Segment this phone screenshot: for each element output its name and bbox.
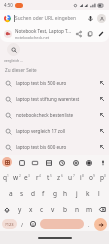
button[interactable]: x [25,202,36,217]
staticText: q [3,173,7,182]
staticText: n [75,205,80,214]
button[interactable]: s [16,186,27,201]
staticText: z [57,173,61,182]
staticText: 7 [73,174,75,178]
staticText: l [98,189,100,198]
button[interactable]: c [36,202,47,217]
staticText: f [42,189,45,198]
staticText: p [100,173,104,182]
button[interactable]: Backspace [95,202,109,217]
staticText: c [40,205,44,214]
button[interactable]: f [38,186,49,201]
button[interactable]: Copy [85,29,95,39]
staticText: laptop test bis 600 euro [16,144,97,150]
button[interactable]: g [49,186,60,201]
staticText: b [63,205,67,214]
staticText: i [80,173,82,182]
button[interactable]: m [83,202,95,217]
button[interactable]: b [59,202,71,217]
staticText: vergleich ... [4,58,24,63]
staticText: 8 [82,174,84,178]
staticText: Notebook Test, Laptop T... [15,28,71,34]
button[interactable]: . [84,217,94,231]
button[interactable]: e [22,170,32,185]
staticText: Suchen oder URL eingeben [15,15,77,22]
button[interactable]: Space [40,219,84,229]
staticText: 4 [39,174,41,178]
staticText: notebookcheck bestenliste [16,112,97,118]
button[interactable]: k [82,186,93,201]
button[interactable]: j [71,186,82,201]
button[interactable]: t [44,170,54,185]
staticText: . [88,221,90,228]
button[interactable]: laptop test stiftung warentest [0,91,109,107]
button[interactable]: Profile [97,14,106,23]
button[interactable]: notebookcheck bestenliste [0,107,109,123]
button[interactable]: Shift [0,202,14,217]
staticText: y [18,205,22,214]
staticText: k [86,189,90,198]
button[interactable]: / [17,217,27,231]
staticText: d [31,189,35,198]
button[interactable]: w [12,170,22,185]
button[interactable]: Tool 5 [84,158,93,167]
button[interactable]: z [55,170,65,185]
button[interactable]: Tool 3 [57,158,66,167]
staticText: x [29,205,33,214]
staticText: 9 [93,174,95,178]
staticText: e [24,173,28,182]
staticText: t [47,173,50,182]
button[interactable] [0,42,109,56]
button[interactable]: laptop test bis 600 euro [0,139,109,155]
button[interactable]: laptop test bis 500 euro [0,75,109,91]
staticText: 2 [19,174,21,178]
button[interactable]: Voice search [86,14,95,23]
staticText: v [51,205,55,214]
staticText: g [53,189,57,198]
button[interactable]: Share [74,29,84,39]
staticText: o [89,173,93,182]
button[interactable]: q [1,170,11,185]
button[interactable]: n [71,202,83,217]
staticText: s [20,189,24,198]
staticText: / [21,221,24,228]
button[interactable]: Tool 6 [98,158,107,167]
button[interactable]: Emoji [27,217,38,231]
staticText: j [76,189,78,198]
button[interactable]: Edit [96,29,106,39]
staticText: h [63,189,68,198]
staticText: 0 [104,174,106,178]
staticText: 5 [50,174,52,178]
staticText: ?123 [5,222,14,227]
button[interactable]: a [5,186,16,201]
staticText: a [9,189,13,198]
staticText: laptop vergleich 17 zoll [16,128,97,134]
button[interactable]: Tool 2 [44,158,53,167]
staticText: Zu dieser Seite [5,67,37,73]
button[interactable]: Notebook Test, Laptop T... [0,26,109,42]
staticText: laptop test bis 500 euro [16,80,97,86]
button[interactable]: u [66,170,76,185]
button[interactable]: Gboard menu [2,157,12,167]
button[interactable]: p [98,170,108,185]
button[interactable]: Tool 4 [71,158,80,167]
staticText: m [86,205,93,214]
staticText: 1 [7,174,9,178]
button[interactable]: y [14,202,25,217]
button[interactable]: o [87,170,97,185]
button[interactable]: r [33,170,43,185]
button[interactable]: laptop vergleich 17 zoll [0,123,109,139]
button[interactable]: Enter [94,218,107,231]
staticText: laptop test stiftung warentest [16,96,97,102]
staticText: u [68,173,73,182]
staticText: 4:50 [4,2,13,8]
button[interactable]: h [60,186,71,201]
button[interactable]: Tool 0 [17,158,26,167]
button[interactable]: Tool 1 [30,158,39,167]
staticText: notebookcheck.net [15,35,50,40]
button[interactable]: l [93,186,104,201]
button[interactable]: v [47,202,59,217]
button[interactable]: d [27,186,38,201]
button[interactable]: ?123 [2,219,17,229]
button[interactable]: i [77,170,87,185]
